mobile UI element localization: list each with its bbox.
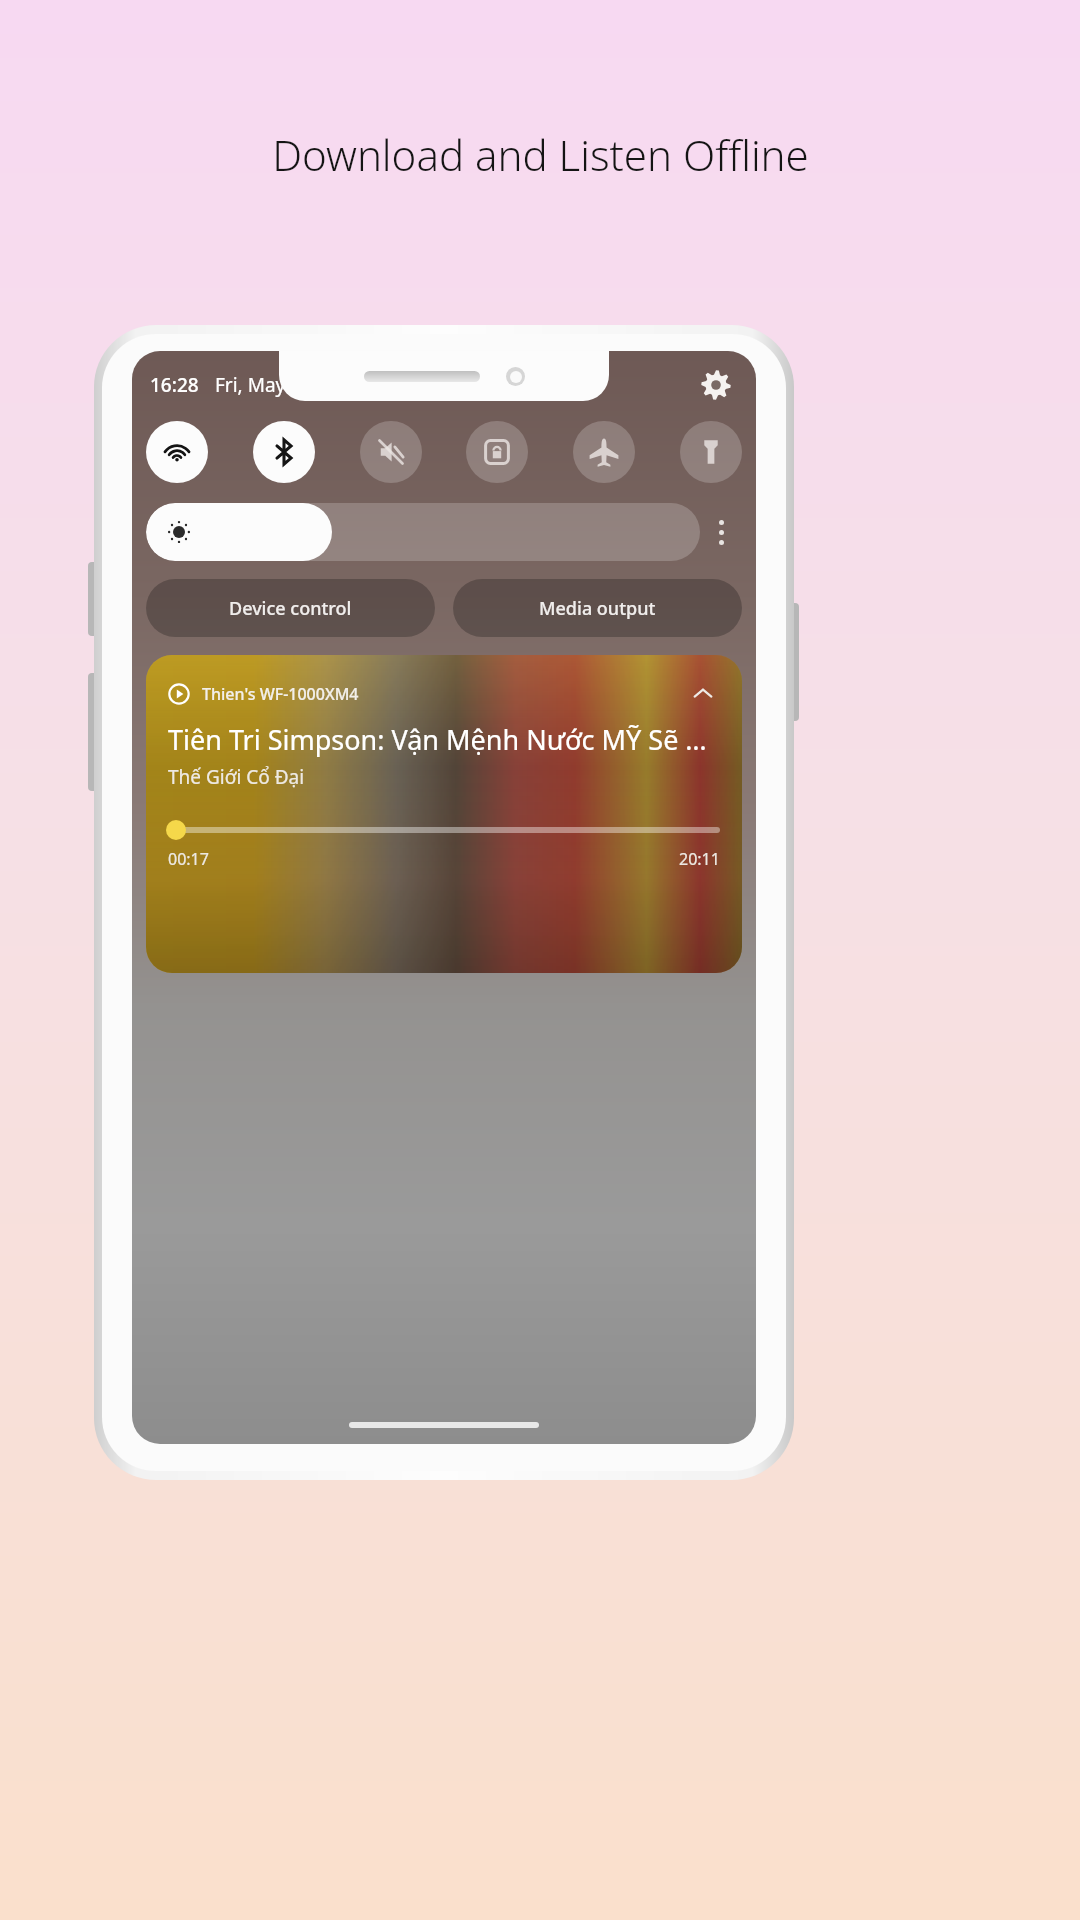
button[interactable]: Thien's WF-1000XM4 (146, 655, 742, 973)
button[interactable]: Auto rotate lock (466, 421, 528, 483)
staticText: Thế Giới Cổ Đại (168, 764, 305, 790)
button[interactable]: Media output (453, 579, 742, 637)
staticText: 20:11 (679, 848, 720, 870)
staticText: Fri, May (215, 372, 286, 398)
button[interactable]: Bluetooth (253, 421, 315, 483)
button[interactable]: Flashlight (680, 421, 742, 483)
button[interactable]: Brightness (146, 503, 700, 561)
staticText: Tiên Tri Simpson: Vận Mệnh Nước MỸ Sẽ Ra… (168, 721, 720, 758)
staticText: Device control (229, 596, 352, 621)
button[interactable]: Settings (694, 363, 738, 407)
button[interactable]: Wi-Fi (146, 421, 208, 483)
staticText: 00:17 (168, 848, 209, 870)
staticText: Download and Listen Offline (272, 126, 809, 183)
button[interactable]: Mute (360, 421, 422, 483)
button[interactable]: More options (700, 503, 742, 561)
button[interactable]: Airplane mode (573, 421, 635, 483)
button[interactable]: Collapse (686, 677, 720, 711)
staticText: Thien's WF-1000XM4 (202, 683, 359, 705)
button[interactable]: Device control (146, 579, 435, 637)
staticText: Media output (539, 596, 656, 621)
staticText: 16:28 (150, 372, 199, 398)
button[interactable]: Seek (168, 820, 720, 840)
